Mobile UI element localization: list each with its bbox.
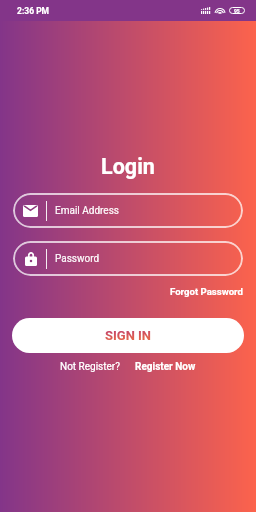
staticText: Email Address — [55, 205, 119, 217]
staticText: Login — [0, 154, 256, 179]
button[interactable]: SIGN IN — [12, 318, 244, 353]
staticText: 95 — [234, 8, 240, 14]
button[interactable]: Forgot Password — [167, 283, 246, 300]
other: Password — [25, 252, 37, 266]
staticText: Register Now — [135, 361, 196, 373]
button[interactable]: Register Now — [132, 358, 199, 376]
button[interactable]: Email — [13, 193, 243, 228]
staticText: SIGN IN — [105, 328, 152, 343]
staticText: Not Register? — [60, 361, 120, 373]
button[interactable]: Password — [13, 241, 243, 276]
staticText: 2:36 PM — [17, 6, 50, 16]
staticText: Forgot Password — [170, 286, 243, 297]
other: Email — [23, 205, 38, 217]
staticText: Password — [55, 253, 100, 265]
